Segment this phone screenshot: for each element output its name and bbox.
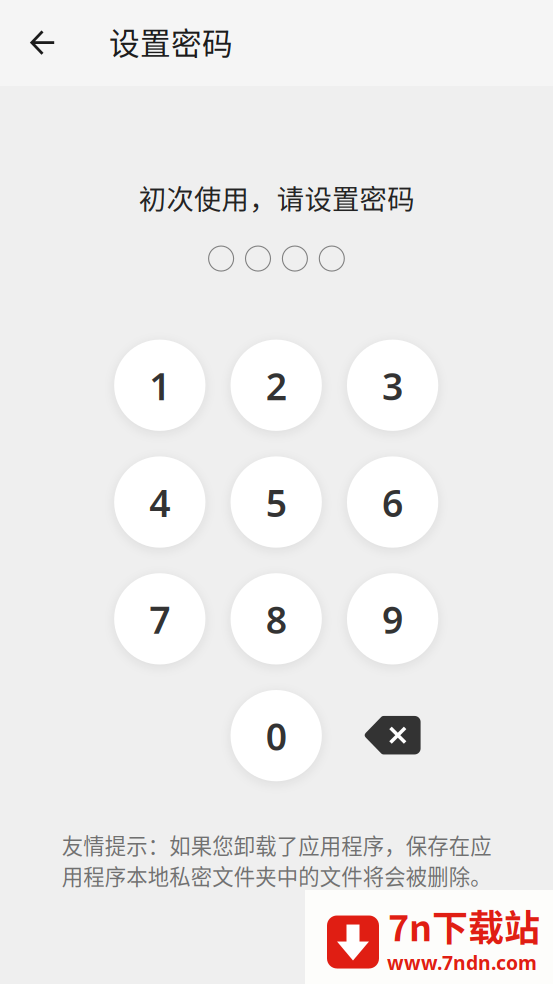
staticText: 设置密码 <box>109 19 233 64</box>
staticText: 5 <box>266 477 287 528</box>
button[interactable]: 6 <box>339 448 446 556</box>
button[interactable]: 9 <box>339 565 446 672</box>
staticText: 初次使用，请设置密码 <box>139 178 414 217</box>
button[interactable]: 0 <box>222 682 330 789</box>
button[interactable]: 2 <box>222 332 330 439</box>
staticText: 4 <box>149 477 170 528</box>
staticText: 3 <box>382 360 403 411</box>
button[interactable]: Delete <box>339 682 446 789</box>
staticText: 6 <box>382 477 403 528</box>
button[interactable]: 5 <box>222 448 330 556</box>
button[interactable]: 3 <box>339 332 446 439</box>
button[interactable]: 7 <box>106 565 213 672</box>
staticText: 2 <box>266 360 287 411</box>
button[interactable]: 1 <box>106 332 213 439</box>
staticText: www.7ndn.com <box>387 949 537 976</box>
staticText: 用程序本地私密文件夹中的文件将会被删除。 <box>62 860 491 891</box>
button[interactable]: 8 <box>222 565 330 672</box>
staticText: 友情提示：如果您卸载了应用程序，保存在应 <box>62 829 491 860</box>
staticText: 1 <box>149 360 170 411</box>
button[interactable]: Back <box>15 15 71 71</box>
staticText: 9 <box>382 594 403 645</box>
staticText: 8 <box>266 594 287 645</box>
staticText: 7 <box>149 594 170 645</box>
button[interactable]: 4 <box>106 448 213 556</box>
staticText: 0 <box>266 711 287 761</box>
staticText: 7n下载站 <box>388 899 540 951</box>
